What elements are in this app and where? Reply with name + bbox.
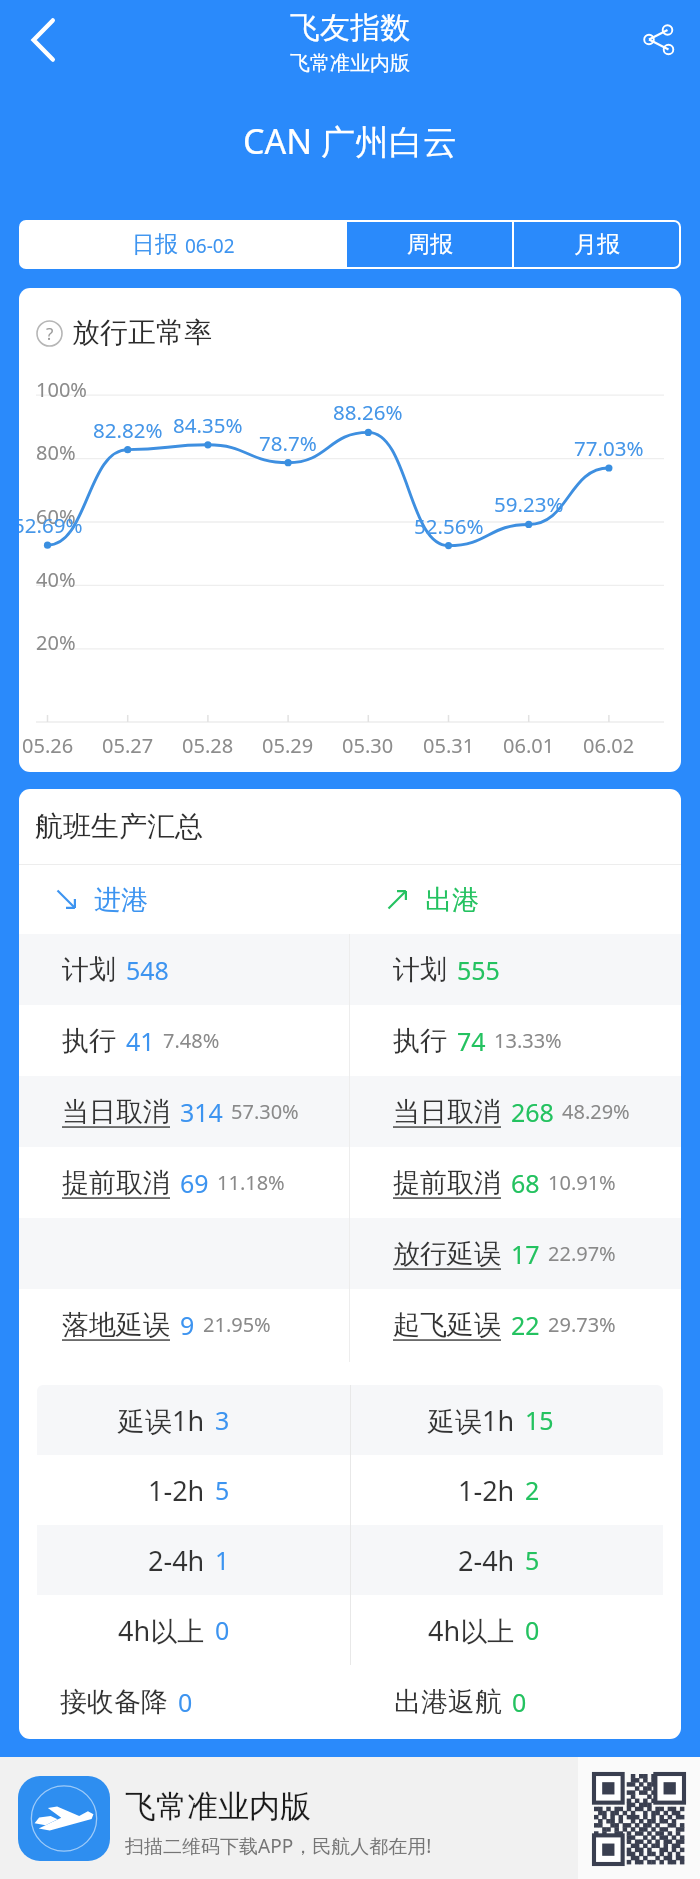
staticText: 落地延误 (62, 1308, 170, 1342)
staticText: 69 (180, 1166, 209, 1200)
staticText: 当日取消 (393, 1095, 501, 1129)
staticText: 82.82% (93, 416, 163, 444)
staticText: ? (46, 322, 54, 345)
staticText: 40% (36, 566, 76, 593)
staticText: 飞常准业内版 (125, 1787, 311, 1826)
staticText: CAN 广州白云 (243, 118, 457, 164)
staticText: 3 (215, 1403, 230, 1437)
staticText: 起飞延误 (393, 1308, 501, 1342)
staticText: 06.02 (583, 732, 635, 759)
staticText: 延误1h (428, 1402, 515, 1439)
staticText: 0 (512, 1685, 527, 1719)
staticText: 13.33% (494, 1027, 562, 1054)
staticText: 0 (215, 1613, 230, 1647)
button[interactable]: 日报 (21, 222, 345, 267)
staticText: 1-2h (148, 1472, 205, 1509)
staticText: 78.7% (259, 429, 317, 457)
staticText: 5 (215, 1473, 230, 1507)
staticText: 05.26 (22, 732, 74, 759)
staticText: 05.27 (102, 732, 154, 759)
staticText: 放行正常率 (72, 315, 212, 350)
staticText: 06.01 (503, 732, 555, 759)
staticText: 20% (36, 629, 76, 656)
button[interactable]: 周报 (347, 222, 512, 267)
staticText: 执行 (62, 1024, 116, 1058)
staticText: 执行 (393, 1024, 447, 1058)
staticText: 80% (36, 439, 76, 466)
staticText: 当日取消 (62, 1095, 170, 1129)
staticText: 4h以上 (118, 1612, 205, 1649)
staticText: 22 (511, 1308, 540, 1342)
staticText: 0 (525, 1613, 540, 1647)
staticText: 74 (457, 1024, 486, 1058)
staticText: 57.30% (231, 1098, 299, 1125)
staticText: 41 (126, 1024, 155, 1058)
staticText: 15 (525, 1403, 554, 1437)
staticText: 555 (457, 953, 500, 987)
staticText: 2-4h (148, 1542, 205, 1579)
staticText: 出港 (425, 883, 479, 917)
staticText: 17 (511, 1237, 540, 1271)
staticText: 接收备降 (60, 1685, 168, 1719)
staticText: 05.31 (423, 732, 475, 759)
staticText: 飞友指数 (290, 9, 410, 47)
staticText: 548 (126, 953, 169, 987)
staticText: 10.91% (548, 1169, 616, 1196)
staticText: 11.18% (217, 1169, 285, 1196)
staticText: 268 (511, 1095, 554, 1129)
staticText: 68 (511, 1166, 540, 1200)
staticText: 扫描二维码下载APP，民航人都在用! (125, 1833, 432, 1859)
staticText: 88.26% (333, 398, 403, 426)
staticText: 计划 (393, 953, 447, 987)
staticText: 06-02 (185, 233, 235, 259)
staticText: 77.03% (574, 434, 644, 462)
staticText: 1-2h (458, 1472, 515, 1509)
staticText: 0 (178, 1685, 193, 1719)
staticText: 52.56% (414, 512, 484, 540)
staticText: 放行延误 (393, 1237, 501, 1271)
staticText: 出港返航 (394, 1685, 502, 1719)
staticText: 05.30 (342, 732, 394, 759)
button[interactable]: 月报 (514, 222, 679, 267)
staticText: 4h以上 (428, 1612, 515, 1649)
staticText: 59.23% (494, 490, 564, 518)
staticText: 7.48% (163, 1027, 220, 1054)
staticText: 进港 (94, 883, 148, 917)
staticText: 航班生产汇总 (35, 809, 203, 844)
staticText: 48.29% (562, 1098, 630, 1125)
staticText: 2 (525, 1473, 540, 1507)
staticText: 提前取消 (62, 1166, 170, 1200)
staticText: 21.95% (203, 1311, 271, 1338)
staticText: 日报 (132, 230, 178, 259)
staticText: 314 (180, 1095, 223, 1129)
staticText: 提前取消 (393, 1166, 501, 1200)
staticText: 29.73% (548, 1311, 616, 1338)
staticText: 5 (525, 1543, 540, 1577)
staticText: 计划 (62, 953, 116, 987)
staticText: 延误1h (118, 1402, 205, 1439)
staticText: 周报 (407, 230, 453, 259)
button[interactable]: Share (630, 12, 686, 68)
staticText: 22.97% (548, 1240, 616, 1267)
staticText: 9 (180, 1308, 195, 1342)
staticText: 1 (215, 1543, 230, 1577)
staticText: 05.28 (182, 732, 234, 759)
staticText: 05.29 (262, 732, 314, 759)
button[interactable]: App icon (18, 1776, 110, 1861)
staticText: 飞常准业内版 (290, 51, 410, 76)
staticText: 60% (36, 503, 76, 530)
staticText: 100% (36, 376, 87, 403)
staticText: 84.35% (173, 411, 243, 439)
staticText: 2-4h (458, 1542, 515, 1579)
staticText: 月报 (574, 230, 620, 259)
staticText: 52.69% (19, 511, 83, 539)
button[interactable]: Back (10, 8, 74, 72)
